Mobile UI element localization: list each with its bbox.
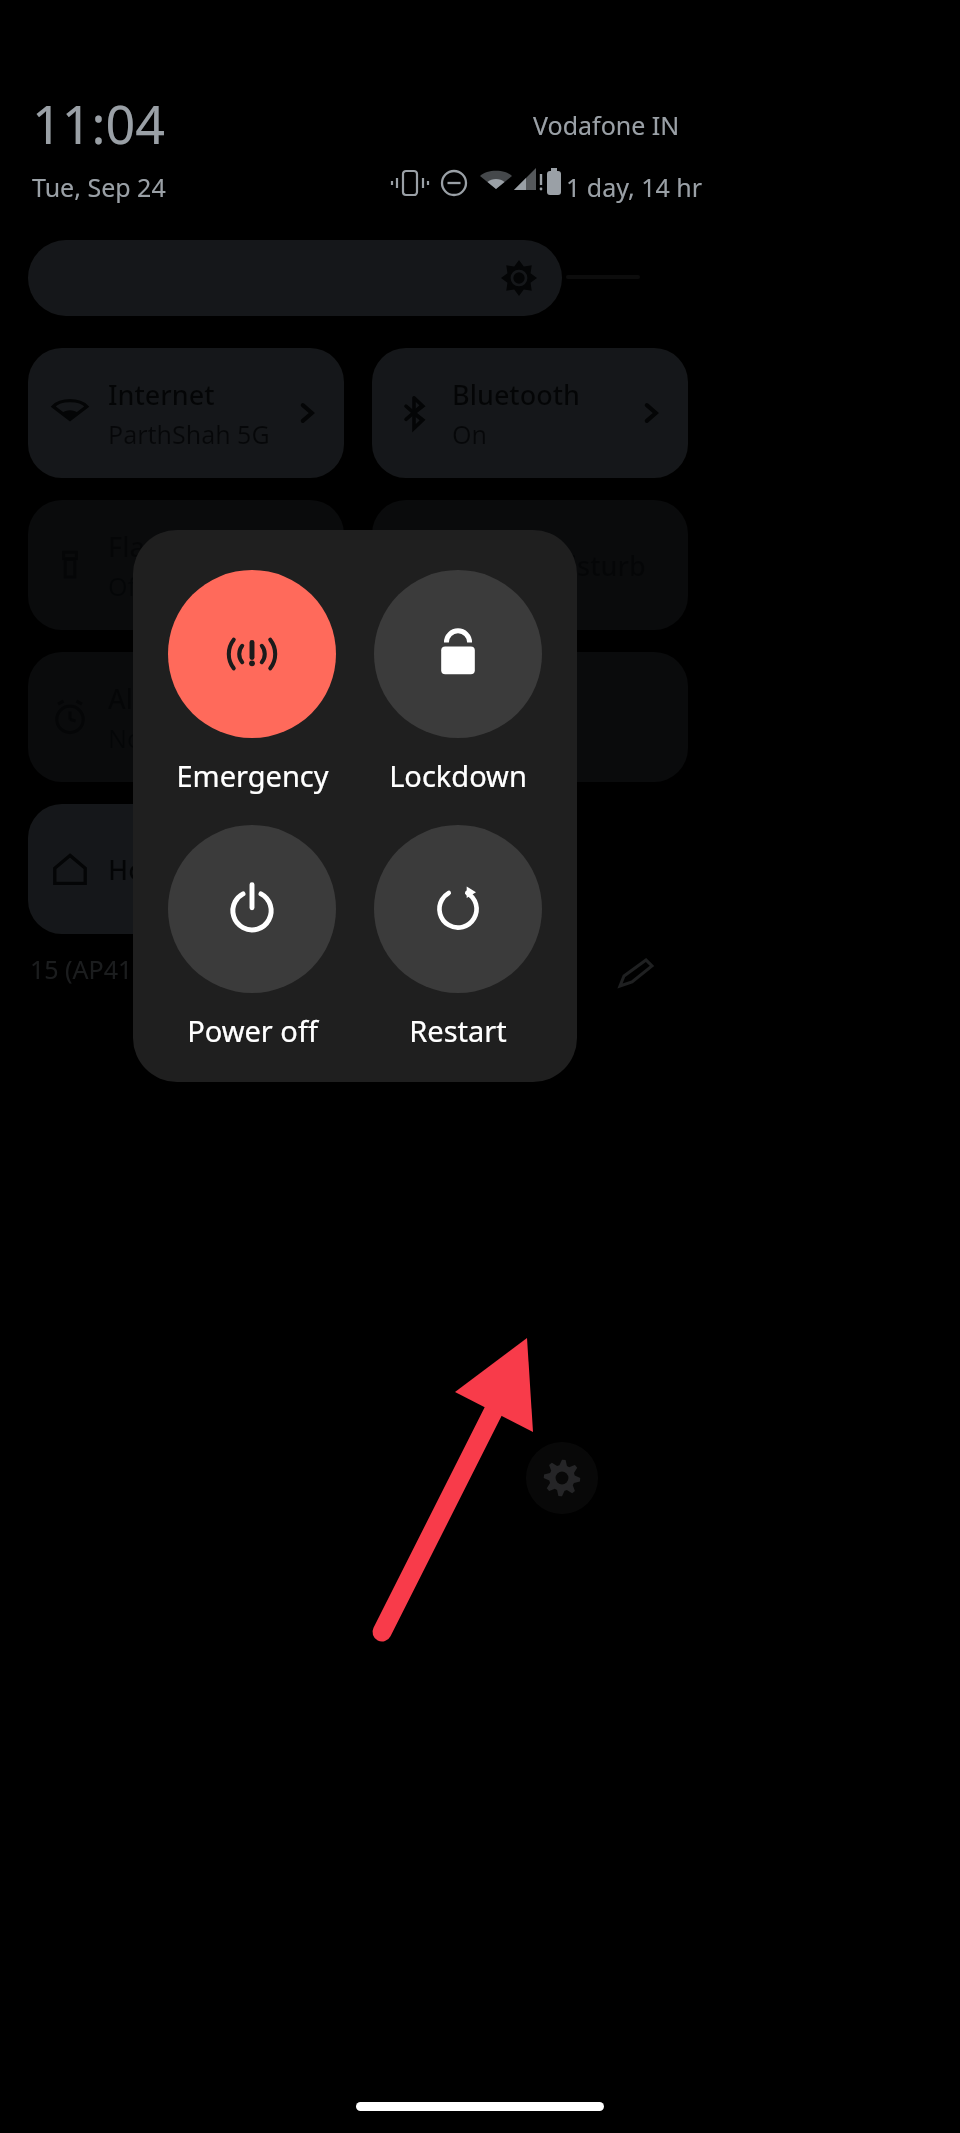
staticText: Internet — [108, 376, 215, 413]
staticText: Power off — [187, 1011, 318, 1050]
staticText: Emergency — [176, 756, 329, 795]
staticText: Alarm — [108, 680, 186, 717]
staticText: Do Not Disturb — [452, 547, 646, 584]
staticText: Home — [108, 851, 186, 888]
staticText: Bluetooth — [452, 376, 580, 413]
other: Edit tiles — [614, 952, 654, 992]
button[interactable]: Do Not Disturb — [372, 500, 688, 630]
staticText: ParthShah 5G — [108, 417, 270, 451]
button[interactable]: Bluetooth — [372, 348, 688, 478]
button[interactable]: Flashlight — [28, 500, 344, 630]
button[interactable]: Power off — [147, 825, 357, 1050]
button[interactable]: Brightness — [28, 240, 562, 316]
button[interactable]: Restart — [353, 825, 563, 1050]
staticText: 11:04 — [32, 88, 165, 159]
button[interactable]: Alarm — [28, 652, 344, 782]
staticText: Tue, Sep 24 — [32, 170, 166, 204]
button[interactable]: Mode — [372, 652, 688, 782]
staticText: Off — [108, 569, 145, 603]
staticText: Vodafone IN — [533, 108, 680, 142]
staticText: None — [108, 721, 172, 755]
staticText: Mode — [452, 699, 526, 736]
button[interactable]: Internet — [28, 348, 344, 478]
button[interactable]: Lockdown — [353, 570, 563, 795]
button[interactable]: Emergency — [147, 570, 357, 795]
staticText: 1 day, 14 hr — [566, 170, 703, 204]
button[interactable]: Home — [28, 804, 344, 934]
staticText: On — [452, 417, 487, 451]
button[interactable]: Settings — [526, 1442, 598, 1514]
staticText: Lockdown — [389, 756, 527, 795]
staticText: Restart — [409, 1011, 507, 1050]
staticText: 15 (AP41… — [30, 952, 153, 986]
staticText: Flashlight — [108, 528, 234, 565]
